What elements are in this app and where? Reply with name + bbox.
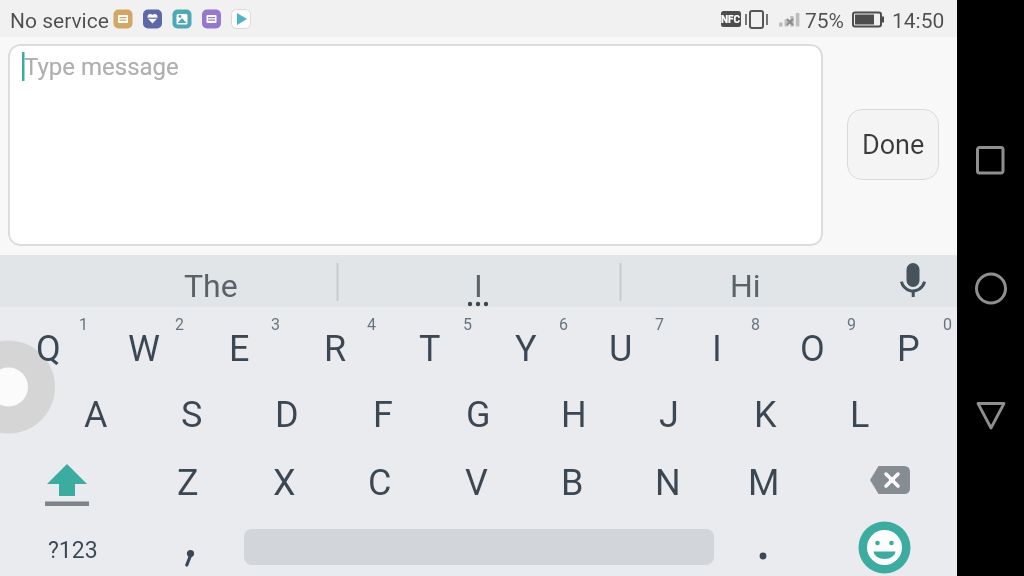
staticText: 8 [751, 315, 760, 334]
staticText: F [373, 394, 393, 436]
staticText: B [561, 462, 584, 504]
button[interactable] [847, 447, 933, 513]
button[interactable]: Done [847, 109, 939, 180]
button[interactable]: I [418, 256, 538, 316]
staticText: Done [862, 129, 925, 161]
button[interactable] [966, 135, 1016, 185]
staticText: 1 [79, 315, 88, 334]
button[interactable]: M [704, 453, 824, 513]
staticText: M [748, 462, 780, 504]
staticText: Type message [24, 53, 179, 81]
staticText: Y [515, 328, 537, 370]
staticText: 3 [271, 315, 280, 334]
staticText: Z [177, 462, 199, 504]
button[interactable]: V [416, 453, 536, 513]
button[interactable] [24, 447, 110, 513]
staticText: NFC [721, 14, 741, 26]
button[interactable]: Q [0, 319, 108, 379]
staticText: C [368, 462, 392, 504]
staticText: 0 [943, 315, 952, 334]
staticText: P [897, 328, 920, 370]
button[interactable]: W [84, 319, 204, 379]
staticText: 4 [367, 315, 376, 334]
staticText: No service [10, 9, 109, 34]
button[interactable]: Hi [685, 256, 805, 316]
staticText: 2 [175, 315, 184, 334]
staticText: 14:50 [892, 9, 945, 34]
button[interactable] [966, 390, 1016, 440]
button[interactable]: H [514, 385, 634, 445]
staticText: R [324, 328, 347, 370]
staticText: U [609, 328, 633, 370]
staticText: I [474, 267, 483, 305]
button[interactable]: G [418, 385, 538, 445]
button[interactable] [966, 263, 1016, 313]
staticText: W [128, 328, 160, 370]
staticText: Q [36, 328, 61, 370]
button[interactable]: O [752, 319, 872, 379]
button[interactable]: Y [466, 319, 586, 379]
staticText: V [465, 462, 488, 504]
staticText: 7 [655, 315, 664, 334]
button[interactable] [858, 521, 911, 574]
staticText: J [659, 394, 679, 436]
staticText: L [850, 394, 870, 436]
button[interactable]: R [275, 319, 395, 379]
staticText: I [712, 328, 722, 370]
button[interactable]: X [224, 453, 344, 513]
button[interactable]: F [323, 385, 443, 445]
staticText: N [655, 462, 681, 504]
button[interactable]: U [561, 319, 681, 379]
staticText: Hi [730, 267, 761, 305]
button[interactable] [869, 258, 955, 304]
button[interactable]: L [800, 385, 920, 445]
button[interactable]: T [370, 319, 490, 379]
button[interactable]: ?123 [13, 520, 133, 576]
button[interactable]: A [36, 385, 156, 445]
button[interactable]: I [657, 319, 777, 379]
button[interactable]: The [151, 256, 271, 316]
staticText: G [466, 394, 491, 436]
button[interactable]: K [705, 385, 825, 445]
staticText: 75% [805, 9, 844, 34]
button[interactable] [720, 514, 806, 576]
staticText: K [754, 394, 777, 436]
staticText: The [184, 267, 238, 305]
staticText: 9 [847, 315, 856, 334]
staticText: A [84, 394, 108, 436]
staticText: ?123 [48, 537, 98, 564]
button[interactable]: C [320, 453, 440, 513]
button[interactable]: S [132, 385, 252, 445]
staticText: X [273, 462, 296, 504]
button[interactable]: E [179, 319, 299, 379]
button[interactable]: D [227, 385, 347, 445]
button[interactable] [147, 514, 233, 576]
staticText: S [181, 394, 203, 436]
staticText: D [275, 394, 299, 436]
button[interactable]: J [609, 385, 729, 445]
staticText: H [561, 394, 587, 436]
staticText: 5 [463, 315, 472, 334]
button[interactable]: Z [128, 453, 248, 513]
button[interactable]: N [608, 453, 728, 513]
staticText: O [800, 328, 825, 370]
staticText: 6 [559, 315, 568, 334]
button[interactable]: B [512, 453, 632, 513]
button[interactable] [8, 44, 823, 246]
staticText: E [229, 328, 250, 370]
button[interactable]: P [848, 319, 968, 379]
staticText: T [419, 328, 441, 370]
